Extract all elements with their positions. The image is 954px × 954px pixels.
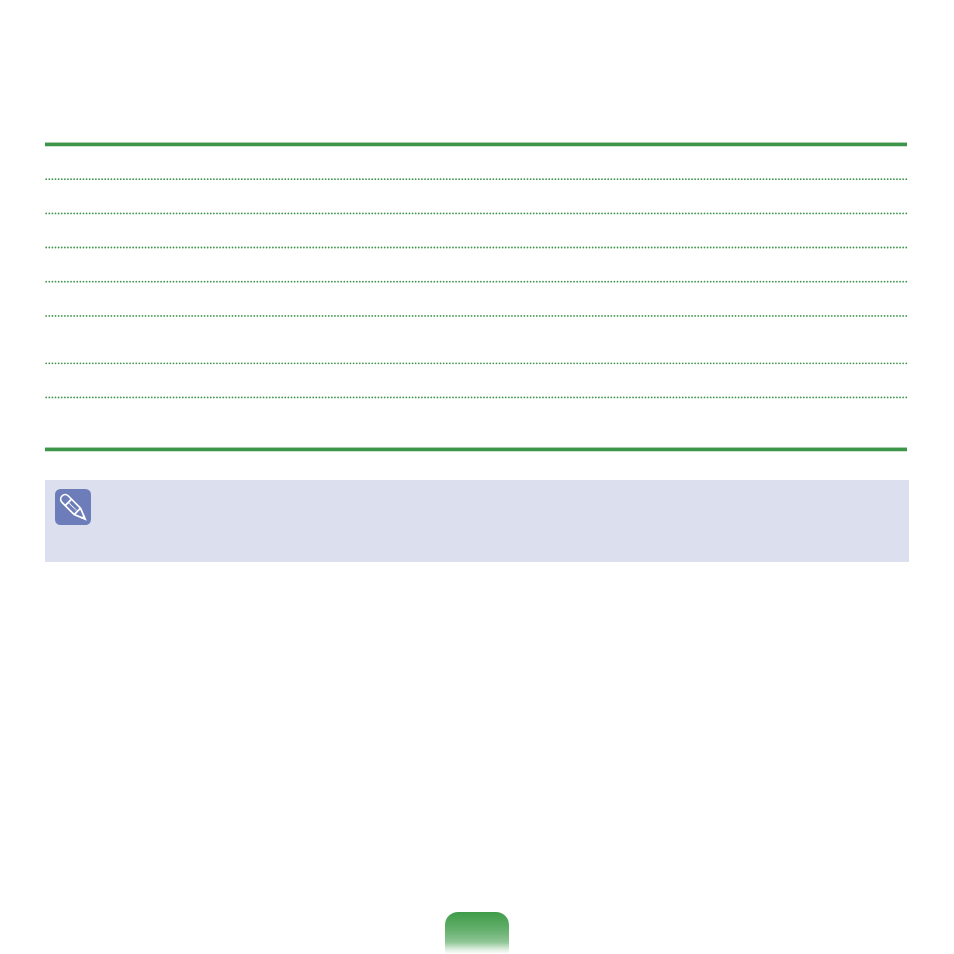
- button[interactable]: New note: [445, 912, 509, 954]
- button[interactable]: Edit: [55, 489, 91, 525]
